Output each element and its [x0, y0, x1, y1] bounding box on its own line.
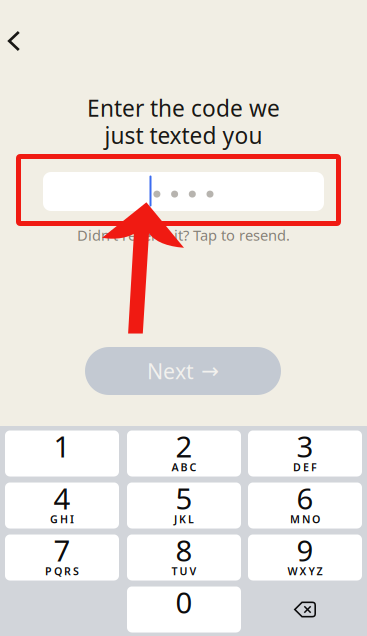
staticText: 9: [296, 530, 313, 569]
staticText: 4: [53, 478, 70, 517]
staticText: 7: [53, 530, 70, 569]
button[interactable]: 3: [248, 430, 362, 476]
staticText: 3: [296, 426, 313, 465]
staticText: →: [201, 359, 219, 383]
button[interactable]: 9: [248, 534, 362, 580]
button[interactable]: 0: [127, 586, 241, 632]
staticText: P Q R S: [45, 564, 79, 578]
button[interactable]: 1: [5, 430, 119, 476]
button[interactable]: 5: [127, 482, 241, 528]
button[interactable]: Didn't receive it? Tap to resend.: [0, 225, 367, 245]
staticText: Didn't receive it? Tap to resend.: [77, 225, 290, 245]
staticText: just texted you: [104, 120, 262, 150]
button[interactable]: Next: [85, 347, 281, 395]
staticText: 0: [175, 582, 192, 621]
staticText: Enter the code we: [87, 93, 280, 123]
button[interactable]: Back: [0, 19, 36, 63]
staticText: G H I: [50, 512, 74, 526]
staticText: T U V: [171, 564, 196, 578]
button[interactable]: 2: [127, 430, 241, 476]
staticText: 1: [53, 426, 70, 465]
button[interactable]: 4: [5, 482, 119, 528]
staticText: 5: [175, 478, 192, 517]
staticText: W X Y Z: [287, 564, 322, 578]
staticText: Next: [147, 357, 194, 385]
staticText: J K L: [174, 512, 194, 526]
staticText: 2: [175, 426, 192, 465]
staticText: 6: [296, 478, 313, 517]
button[interactable]: 8: [127, 534, 241, 580]
button[interactable]: 7: [5, 534, 119, 580]
staticText: D E F: [293, 460, 317, 474]
staticText: M N O: [290, 512, 320, 526]
button[interactable]: Delete: [248, 586, 362, 632]
button[interactable]: 6: [248, 482, 362, 528]
staticText: 8: [175, 530, 192, 569]
staticText: A B C: [171, 460, 196, 474]
